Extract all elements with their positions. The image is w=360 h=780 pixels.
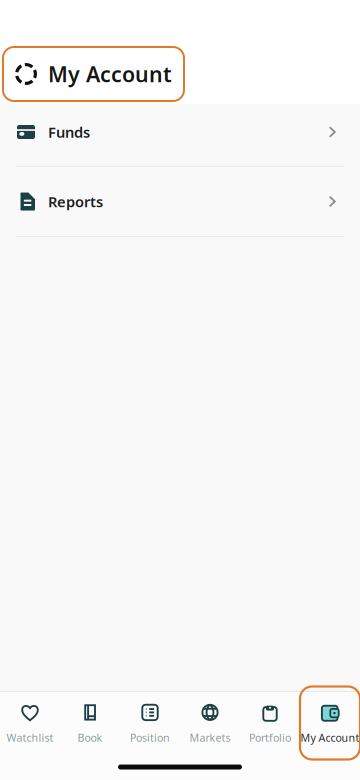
button[interactable]: My Account bbox=[300, 692, 360, 754]
button[interactable]: Position bbox=[120, 692, 180, 754]
button[interactable]: Book bbox=[60, 692, 120, 754]
button[interactable]: Funds bbox=[0, 104, 360, 167]
button[interactable]: Watchlist bbox=[0, 692, 60, 754]
staticText: Position bbox=[130, 730, 170, 745]
button[interactable]: My Account bbox=[3, 47, 184, 101]
staticText: Portfolio bbox=[249, 730, 291, 745]
staticText: My Account bbox=[300, 730, 359, 745]
staticText: Book bbox=[77, 730, 102, 745]
staticText: Watchlist bbox=[6, 730, 53, 745]
button[interactable]: Markets bbox=[180, 692, 240, 754]
staticText: Reports bbox=[48, 192, 103, 211]
staticText: My Account bbox=[48, 60, 172, 88]
button[interactable]: Reports bbox=[0, 167, 360, 237]
staticText: Funds bbox=[48, 122, 90, 142]
staticText: Markets bbox=[189, 730, 230, 745]
button[interactable]: Portfolio bbox=[240, 692, 300, 754]
